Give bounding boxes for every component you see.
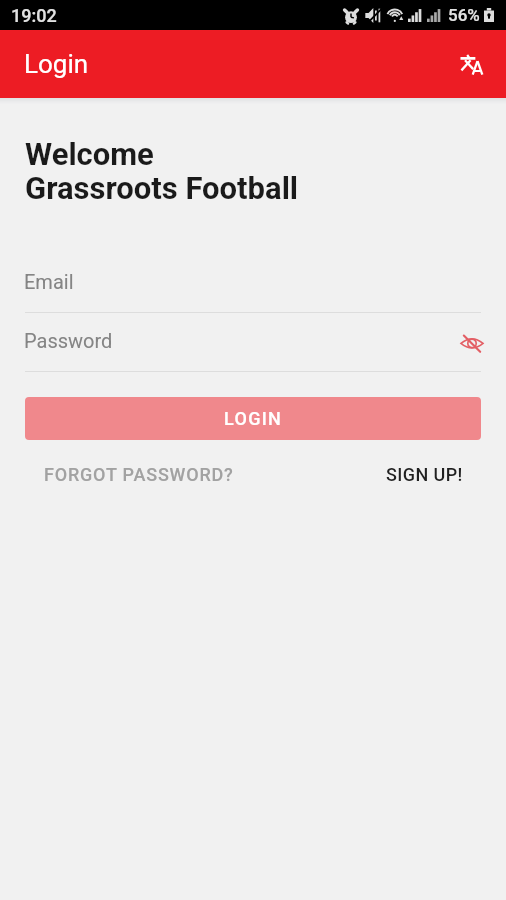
button[interactable]: FORGOT PASSWORD?: [25, 456, 253, 493]
button[interactable]: Translate language: [448, 40, 496, 88]
staticText: Login: [24, 49, 89, 79]
staticText: SIGN UP!: [386, 464, 463, 485]
button[interactable]: LOGIN: [25, 397, 481, 440]
staticText: Welcome Grassroots Football: [25, 136, 299, 206]
staticText: 56%: [448, 5, 480, 25]
staticText: Email: [24, 270, 74, 293]
staticText: 19:02: [11, 5, 57, 26]
button[interactable]: SIGN UP!: [368, 456, 481, 493]
staticText: Password: [24, 329, 113, 352]
staticText: LOGIN: [224, 408, 283, 429]
staticText: FORGOT PASSWORD?: [44, 464, 234, 485]
button[interactable]: Show password: [457, 328, 487, 358]
